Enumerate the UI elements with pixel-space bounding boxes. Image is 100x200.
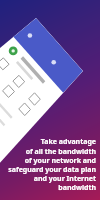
staticText: Take advantage of all the bandwidth of y…	[4, 137, 96, 192]
